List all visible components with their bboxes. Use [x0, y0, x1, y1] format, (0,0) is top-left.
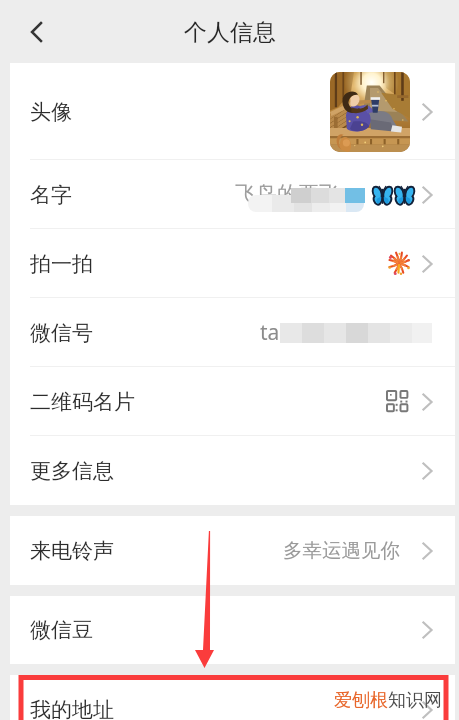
button[interactable]: 二维码名片 [10, 367, 455, 436]
staticText: 拍一拍 [30, 251, 93, 277]
button[interactable]: 我的地址 [10, 675, 455, 720]
staticText: 微信号 [30, 320, 93, 346]
button[interactable]: 名字 [10, 160, 455, 229]
button[interactable]: 来电铃声 [10, 516, 455, 585]
button[interactable]: 拍一拍 [10, 229, 455, 298]
staticText: 我的地址 [30, 697, 114, 720]
staticText: 来电铃声 [30, 538, 114, 564]
staticText: 飞鸟的要飞 [235, 181, 340, 207]
staticText: 微信豆 [30, 617, 93, 643]
staticText: 个人信息 [184, 18, 276, 47]
button[interactable]: 微信号 [10, 298, 455, 367]
staticText: 名字 [30, 182, 72, 208]
button[interactable]: 微信豆 [10, 596, 455, 664]
button[interactable]: 更多信息 [10, 436, 455, 505]
staticText: 二维码名片 [30, 389, 135, 415]
button[interactable]: Back [18, 14, 54, 50]
staticText: ta [260, 318, 280, 347]
button[interactable]: 头像 [10, 63, 455, 160]
staticText: 更多信息 [30, 458, 114, 484]
staticText: 知识网 [388, 689, 442, 712]
staticText: 多幸运遇见你 [283, 538, 400, 563]
staticText: 爱刨根 [334, 689, 388, 712]
staticText: 头像 [30, 99, 72, 125]
